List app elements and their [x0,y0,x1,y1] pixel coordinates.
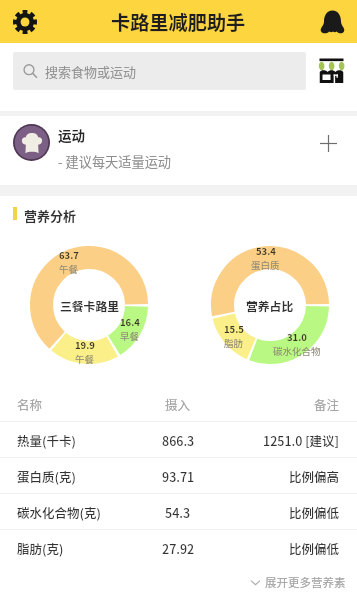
button[interactable]: 搜索食物或运动 [13,52,306,90]
staticText: 54.3 [165,503,191,521]
staticText: 午餐 [59,262,79,276]
staticText: 蛋白质(克) [17,467,76,485]
staticText: 三餐卡路里 [60,297,119,314]
staticText: 营养分析 [24,206,77,225]
staticText: 搜索食物或运动 [45,62,137,81]
staticText: 93.71 [162,467,195,485]
staticText: 展开更多营养素 [265,574,346,591]
staticText: - 建议每天适量运动 [58,152,172,171]
staticText: 19.9 [75,338,95,352]
staticText: 1251.0 [建议] [263,431,340,449]
staticText: 午餐 [75,352,95,366]
staticText: 脂肪 [224,336,244,350]
button[interactable]: 展开更多营养素 [0,565,357,600]
staticText: 碳水化合物 [273,344,321,358]
staticText: 16.4 [120,315,140,329]
staticText: 53.4 [256,244,276,258]
button[interactable]: QQ [317,7,347,37]
staticText: 备注 [314,395,340,413]
staticText: 15.5 [224,322,244,336]
button[interactable]: Settings [9,6,41,38]
staticText: 27.92 [162,539,195,557]
staticText: 碳水化合物(克) [17,503,101,521]
staticText: 63.7 [59,248,79,262]
staticText: 热量(千卡) [17,431,76,449]
staticText: 摄入 [165,395,191,413]
staticText: 866.3 [162,431,195,449]
staticText: 比例偏高 [289,467,340,485]
staticText: 营养占比 [246,297,294,314]
button[interactable]: 运动 [0,116,357,185]
button[interactable]: Store [316,54,346,84]
button[interactable]: Add exercise [314,129,342,157]
staticText: 运动 [58,125,85,145]
staticText: 蛋白质 [251,258,280,272]
staticText: 比例偏低 [289,503,340,521]
staticText: 比例偏低 [289,539,340,557]
staticText: 脂肪(克) [17,539,64,557]
staticText: 名称 [17,395,43,413]
staticText: 早餐 [120,329,140,343]
staticText: 31.0 [287,330,307,344]
staticText: 卡路里减肥助手 [111,8,246,36]
